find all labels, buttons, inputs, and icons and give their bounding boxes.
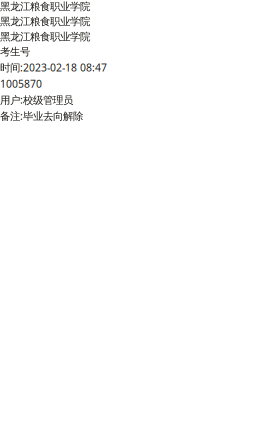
staticText: 黑龙江粮食职业学院: [0, 30, 90, 43]
staticText: 黑龙江粮食职业学院: [0, 0, 90, 13]
staticText: 黑龙江粮食职业学院: [0, 15, 90, 28]
staticText: 用户:校级管理员: [0, 93, 73, 107]
staticText: 时间:2023-02-18 08:47: [0, 60, 107, 75]
staticText: 考生号: [0, 45, 30, 58]
staticText: 备注:毕业去向解除: [0, 109, 83, 123]
staticText: 1005870: [0, 77, 42, 91]
